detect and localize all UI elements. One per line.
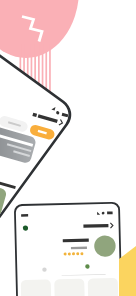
button[interactable]: [0, 0, 136, 296]
